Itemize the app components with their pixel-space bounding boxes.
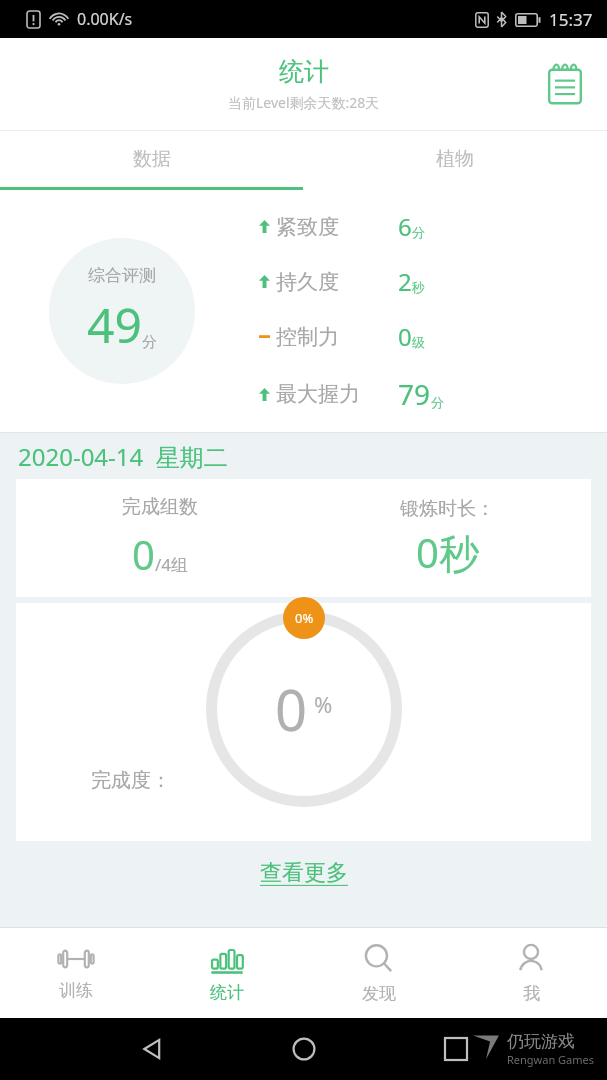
staticText: 我 <box>523 983 540 1004</box>
staticText: 植物 <box>436 147 474 171</box>
staticText: 锻炼时长： <box>400 497 495 521</box>
staticText: 分 <box>142 333 157 352</box>
staticText: 0 <box>398 320 412 353</box>
button[interactable]: 我 <box>455 928 607 1018</box>
staticText: 0秒 <box>416 525 479 580</box>
button[interactable]: 植物 <box>303 131 607 187</box>
staticText: 0 <box>275 671 308 747</box>
button[interactable]: 统计 <box>151 928 303 1018</box>
staticText: 统计 <box>210 982 244 1003</box>
button[interactable]: 查看更多 <box>246 853 362 893</box>
staticText: 15:37 <box>549 8 593 31</box>
button[interactable]: 发现 <box>303 928 455 1018</box>
staticText: 数据 <box>133 147 171 171</box>
staticText: 级 <box>412 334 425 350</box>
staticText: 49 <box>87 292 142 357</box>
staticText: /4组 <box>155 553 189 576</box>
button[interactable]: 数据 <box>0 131 303 187</box>
staticText: 统计 <box>279 56 329 87</box>
staticText: 6 <box>398 210 412 243</box>
staticText: 最大握力 <box>276 381 360 407</box>
staticText: 2020-04-14 星期二 <box>18 440 228 473</box>
staticText: 79 <box>398 375 431 413</box>
staticText: 发现 <box>362 983 396 1004</box>
button[interactable]: 训练 <box>0 928 151 1018</box>
staticText: 0 <box>132 527 155 581</box>
staticText: 秒 <box>412 279 425 295</box>
staticText: 当前Level剩余天数:28天 <box>228 93 380 112</box>
staticText: 紧致度 <box>276 214 339 240</box>
staticText: % <box>314 689 333 719</box>
staticText: 完成组数 <box>122 495 198 519</box>
staticText: 综合评测 <box>88 265 156 286</box>
staticText: 查看更多 <box>260 859 348 887</box>
staticText: 分 <box>412 224 425 240</box>
staticText: 仍玩游戏 <box>507 1031 575 1052</box>
staticText: 0% <box>295 609 314 627</box>
staticText: 持久度 <box>276 269 339 295</box>
button[interactable]: 记录 <box>543 62 587 106</box>
staticText: 控制力 <box>276 324 339 350</box>
staticText: Rengwan Games <box>507 1052 595 1067</box>
staticText: 训练 <box>59 980 93 1001</box>
staticText: 分 <box>431 394 444 410</box>
staticText: 2 <box>398 265 412 298</box>
staticText: 0.00K/s <box>77 8 133 30</box>
staticText: 完成度： <box>91 768 171 793</box>
